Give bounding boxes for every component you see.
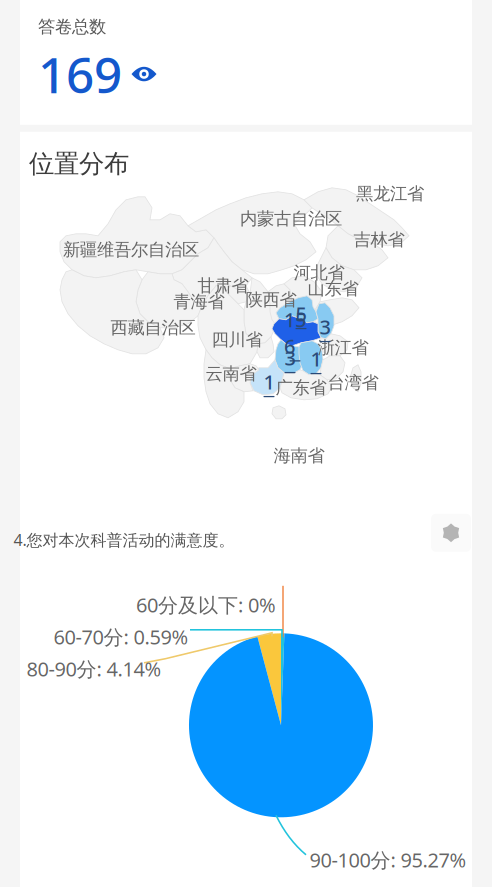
staticText: 广东省 <box>275 377 326 398</box>
staticText: 5 <box>295 300 306 327</box>
staticText: 四川省 <box>211 329 262 350</box>
staticText: 黑龙江省 <box>356 183 424 204</box>
staticText: 1 <box>310 345 321 372</box>
staticText: 3 <box>319 313 330 340</box>
staticText: 浙江省 <box>317 337 368 358</box>
button[interactable]: Chart settings <box>431 514 471 552</box>
staticText: 云南省 <box>205 363 256 384</box>
staticText: 位置分布 <box>29 148 129 179</box>
staticText: 156 <box>284 306 306 359</box>
staticText: 陕西省 <box>245 289 296 310</box>
staticText: 1 <box>263 368 274 395</box>
staticText: 答卷总数 <box>38 16 106 37</box>
staticText: 内蒙古自治区 <box>240 208 342 229</box>
staticText: 西藏自治区 <box>110 317 195 338</box>
staticText: 60分及以下: 0% <box>136 591 276 618</box>
staticText: 169 <box>38 41 122 107</box>
staticText: 新疆维吾尔自治区 <box>63 239 199 260</box>
staticText: 山东省 <box>307 278 358 299</box>
staticText: 青海省 <box>173 291 224 312</box>
staticText: 吉林省 <box>353 229 404 250</box>
staticText: 台湾省 <box>327 372 378 393</box>
staticText: 河北省 <box>293 262 344 283</box>
staticText: 80-90分: 4.14% <box>26 655 161 682</box>
staticText: 甘肃省 <box>197 275 248 296</box>
staticText: 4.您对本次科普活动的满意度。 <box>13 529 234 550</box>
staticText: 60-70分: 0.59% <box>53 623 188 650</box>
staticText: 3 <box>284 344 295 371</box>
staticText: 海南省 <box>273 445 324 466</box>
staticText: 90-100分: 95.27% <box>309 846 466 873</box>
